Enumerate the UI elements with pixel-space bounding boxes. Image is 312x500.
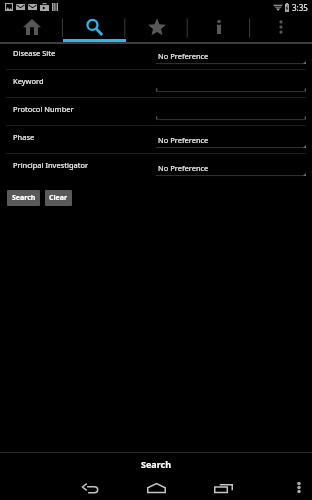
button[interactable]: Search: [0, 453, 312, 475]
button[interactable]: No Preference: [156, 126, 306, 153]
button[interactable]: No Preference: [156, 44, 306, 69]
button[interactable]: Search: [7, 190, 40, 206]
staticText: No Preference: [158, 135, 209, 145]
staticText: Search: [141, 458, 172, 470]
staticText: Keyword: [13, 76, 44, 86]
staticText: No Preference: [158, 163, 209, 173]
button[interactable]: Info: [188, 14, 250, 42]
button[interactable]: More options: [250, 14, 312, 42]
button[interactable]: Clear: [45, 190, 72, 206]
button[interactable]: Back: [68, 478, 112, 497]
staticText: Phase: [13, 132, 35, 142]
button[interactable]: [156, 98, 306, 125]
staticText: No Preference: [158, 51, 209, 61]
staticText: Disease Site: [13, 48, 56, 58]
staticText: Search: [12, 193, 36, 203]
button[interactable]: Recent apps: [201, 478, 245, 497]
staticText: Principal Investigator: [13, 160, 89, 170]
button[interactable]: Favorites: [126, 14, 188, 42]
button[interactable]: More options: [288, 478, 309, 497]
button[interactable]: Search: [63, 14, 126, 42]
button[interactable]: Home: [134, 478, 178, 497]
staticText: Clear: [49, 193, 68, 203]
button[interactable]: [156, 70, 306, 97]
button[interactable]: No Preference: [156, 154, 306, 181]
button[interactable]: Home: [0, 14, 63, 42]
staticText: 3:35: [292, 2, 308, 13]
staticText: Protocol Number: [13, 104, 74, 114]
